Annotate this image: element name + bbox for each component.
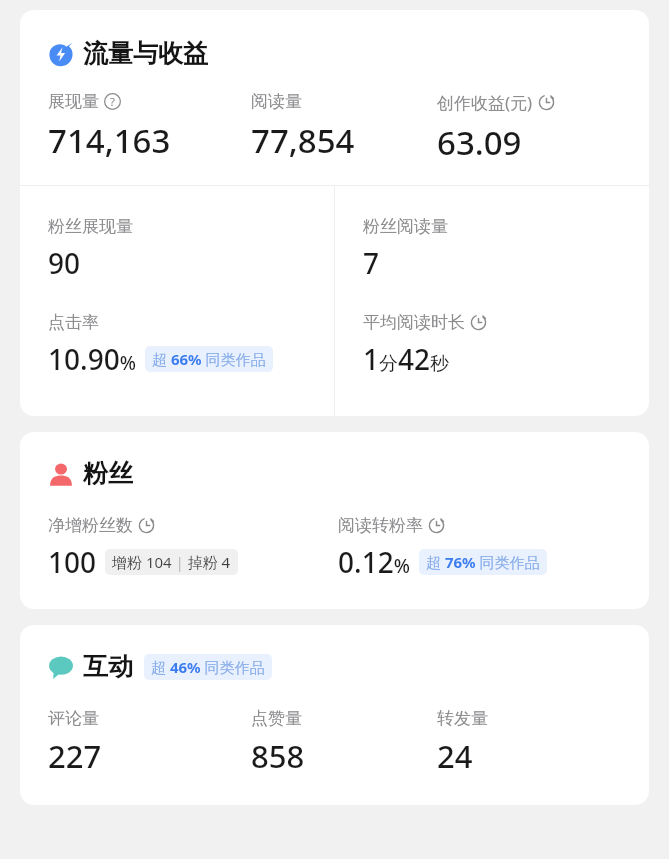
- staticText: 增粉 104 | 掉粉 4: [112, 552, 231, 572]
- staticText: 10.90%: [48, 340, 136, 378]
- button[interactable]: 净增粉丝数: [48, 515, 338, 581]
- staticText: 粉丝展现量: [48, 216, 133, 237]
- button[interactable]: 转发量: [437, 708, 629, 777]
- button[interactable]: 粉丝阅读量: [335, 186, 649, 416]
- staticText: 粉丝阅读量: [363, 216, 448, 237]
- staticText: 7: [363, 244, 380, 282]
- staticText: 转发量: [437, 708, 488, 729]
- staticText: 展现量: [48, 91, 99, 112]
- button[interactable]: 阅读转粉率: [338, 515, 629, 581]
- button[interactable]: 创作收益(元): [437, 91, 629, 165]
- staticText: 粉丝: [83, 458, 133, 489]
- staticText: 24: [437, 735, 473, 777]
- staticText: 超 66% 同类作品: [152, 349, 266, 369]
- button[interactable]: 点赞量: [251, 708, 437, 777]
- staticText: 互动: [83, 651, 133, 682]
- staticText: 77,854: [251, 118, 355, 163]
- staticText: 阅读转粉率: [338, 515, 423, 536]
- button[interactable]: 粉丝展现量: [20, 186, 334, 416]
- staticText: ?: [110, 94, 115, 109]
- staticText: 90: [48, 244, 81, 282]
- button[interactable]: 超 46% 同类作品: [144, 654, 272, 680]
- staticText: 阅读量: [251, 91, 302, 112]
- button[interactable]: 增粉 104 | 掉粉 4: [105, 549, 238, 575]
- staticText: 714,163: [48, 118, 171, 163]
- staticText: 超 76% 同类作品: [426, 552, 540, 572]
- staticText: 平均阅读时长: [363, 312, 465, 333]
- staticText: 63.09: [437, 120, 522, 165]
- staticText: 1分42秒: [363, 340, 450, 378]
- staticText: 点赞量: [251, 708, 302, 729]
- staticText: 评论量: [48, 708, 99, 729]
- staticText: 858: [251, 735, 305, 777]
- staticText: 流量与收益: [83, 38, 208, 69]
- staticText: 100: [48, 543, 97, 581]
- staticText: 0.12%: [338, 543, 410, 581]
- button[interactable]: 阅读量: [251, 91, 437, 163]
- staticText: 点击率: [48, 312, 99, 333]
- staticText: 227: [48, 735, 102, 777]
- staticText: 超 46% 同类作品: [151, 657, 265, 677]
- staticText: 净增粉丝数: [48, 515, 133, 536]
- button[interactable]: 超 76% 同类作品: [419, 549, 547, 575]
- staticText: 创作收益(元): [437, 91, 533, 114]
- button[interactable]: 展现量: [48, 91, 251, 163]
- button[interactable]: 评论量: [48, 708, 251, 777]
- button[interactable]: 超 66% 同类作品: [145, 346, 273, 372]
